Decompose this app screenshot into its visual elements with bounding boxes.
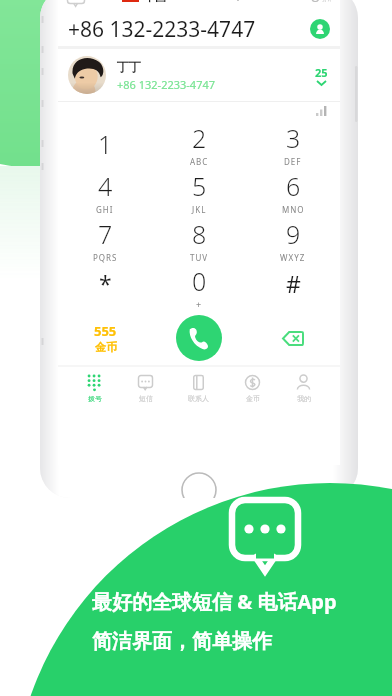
- staticText: 7: [98, 217, 113, 251]
- staticText: 我的: [297, 394, 311, 403]
- staticText: 金币: [95, 340, 117, 354]
- button[interactable]: Messages: [66, 0, 86, 8]
- staticText: 6: [286, 169, 301, 203]
- button[interactable]: 7: [58, 216, 152, 264]
- staticText: +: [196, 298, 203, 310]
- staticText: 25: [315, 65, 328, 80]
- staticText: 0: [192, 264, 207, 298]
- button[interactable]: 3: [246, 120, 340, 168]
- staticText: 最好的全球短信 & 电话App: [92, 588, 337, 615]
- button[interactable]: *: [58, 264, 152, 310]
- button[interactable]: 拨号: [80, 372, 109, 405]
- staticText: 联系人: [188, 394, 209, 403]
- staticText: 3: [286, 121, 301, 155]
- button[interactable]: 8: [152, 216, 246, 264]
- button[interactable]: 短信: [131, 372, 160, 405]
- staticText: 金币: [246, 394, 260, 403]
- button[interactable]: 5: [152, 168, 246, 216]
- staticText: 2: [192, 121, 207, 155]
- button[interactable]: 4: [58, 168, 152, 216]
- staticText: 拨号: [88, 394, 102, 403]
- staticText: 中国: [144, 0, 166, 4]
- button[interactable]: 9: [246, 216, 340, 264]
- button[interactable]: 金币: [238, 372, 267, 405]
- staticText: 555: [94, 322, 117, 340]
- staticText: 8: [192, 217, 207, 251]
- button[interactable]: 2: [152, 120, 246, 168]
- staticText: 短信: [139, 394, 153, 403]
- staticText: PQRS: [93, 252, 118, 263]
- button[interactable]: 555: [90, 318, 121, 358]
- button[interactable]: 我的: [289, 372, 318, 405]
- staticText: JKL: [192, 204, 207, 215]
- staticText: 8: [311, 0, 320, 6]
- button[interactable]: #: [246, 264, 340, 310]
- staticText: ABC: [190, 156, 209, 167]
- button[interactable]: 1: [58, 120, 152, 168]
- button[interactable]: Expand country: [231, 0, 245, 4]
- button[interactable]: 0: [152, 264, 246, 310]
- staticText: GHI: [96, 204, 114, 215]
- staticText: TUV: [190, 252, 209, 263]
- button[interactable]: 丁丁: [58, 49, 340, 101]
- staticText: 5: [192, 169, 207, 203]
- button[interactable]: 6: [246, 168, 340, 216]
- button[interactable]: 联系人: [182, 372, 215, 405]
- staticText: 简洁界面，简单操作: [92, 629, 272, 654]
- staticText: 4: [98, 169, 113, 203]
- staticText: 分钟: [322, 0, 332, 2]
- staticText: 1: [98, 127, 113, 161]
- button[interactable]: Add contact: [310, 19, 330, 39]
- staticText: WXYZ: [280, 252, 306, 263]
- staticText: 丁丁: [117, 59, 141, 74]
- staticText: *: [99, 268, 112, 299]
- staticText: +86 132-2233-4747: [68, 15, 310, 44]
- staticText: +86 132-2233-4747: [117, 77, 216, 92]
- button[interactable]: Delete: [278, 327, 308, 349]
- staticText: #: [286, 268, 301, 299]
- staticText: DEF: [284, 156, 302, 167]
- staticText: 9: [286, 217, 301, 251]
- button[interactable]: Call: [176, 315, 222, 361]
- staticText: MNO: [282, 204, 305, 215]
